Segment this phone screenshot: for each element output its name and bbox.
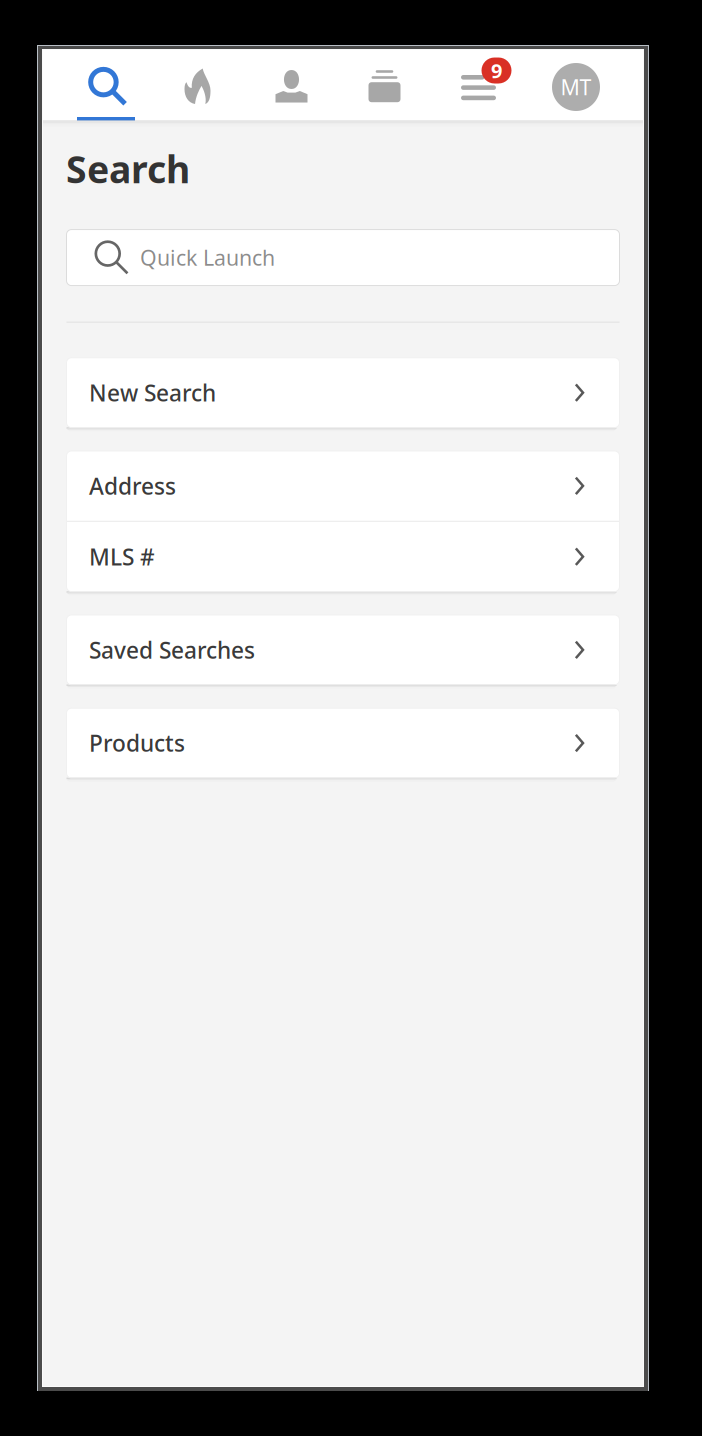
button[interactable]: MLS # xyxy=(66,522,619,592)
button[interactable]: Products xyxy=(66,708,619,778)
button[interactable]: Hot sheet xyxy=(157,50,237,121)
button[interactable]: Listings xyxy=(344,50,424,121)
button[interactable]: Search xyxy=(66,50,146,121)
staticText: Quick Launch xyxy=(140,243,275,272)
button[interactable]: Account xyxy=(536,50,616,121)
staticText: MT xyxy=(560,73,591,101)
button[interactable]: Quick Launch xyxy=(66,230,619,286)
button[interactable]: Saved Searches xyxy=(66,615,619,685)
staticText: 9 xyxy=(491,57,502,84)
staticText: MLS # xyxy=(89,542,155,572)
staticText: Products xyxy=(89,728,185,758)
staticText: New Search xyxy=(89,378,216,408)
button[interactable]: Address xyxy=(66,451,619,521)
button[interactable]: Menu, 9 new xyxy=(446,50,522,121)
button[interactable]: Contacts xyxy=(251,50,331,121)
staticText: Search xyxy=(66,144,190,194)
button[interactable]: New Search xyxy=(66,358,619,428)
staticText: Saved Searches xyxy=(89,635,255,665)
staticText: Address xyxy=(89,471,176,501)
